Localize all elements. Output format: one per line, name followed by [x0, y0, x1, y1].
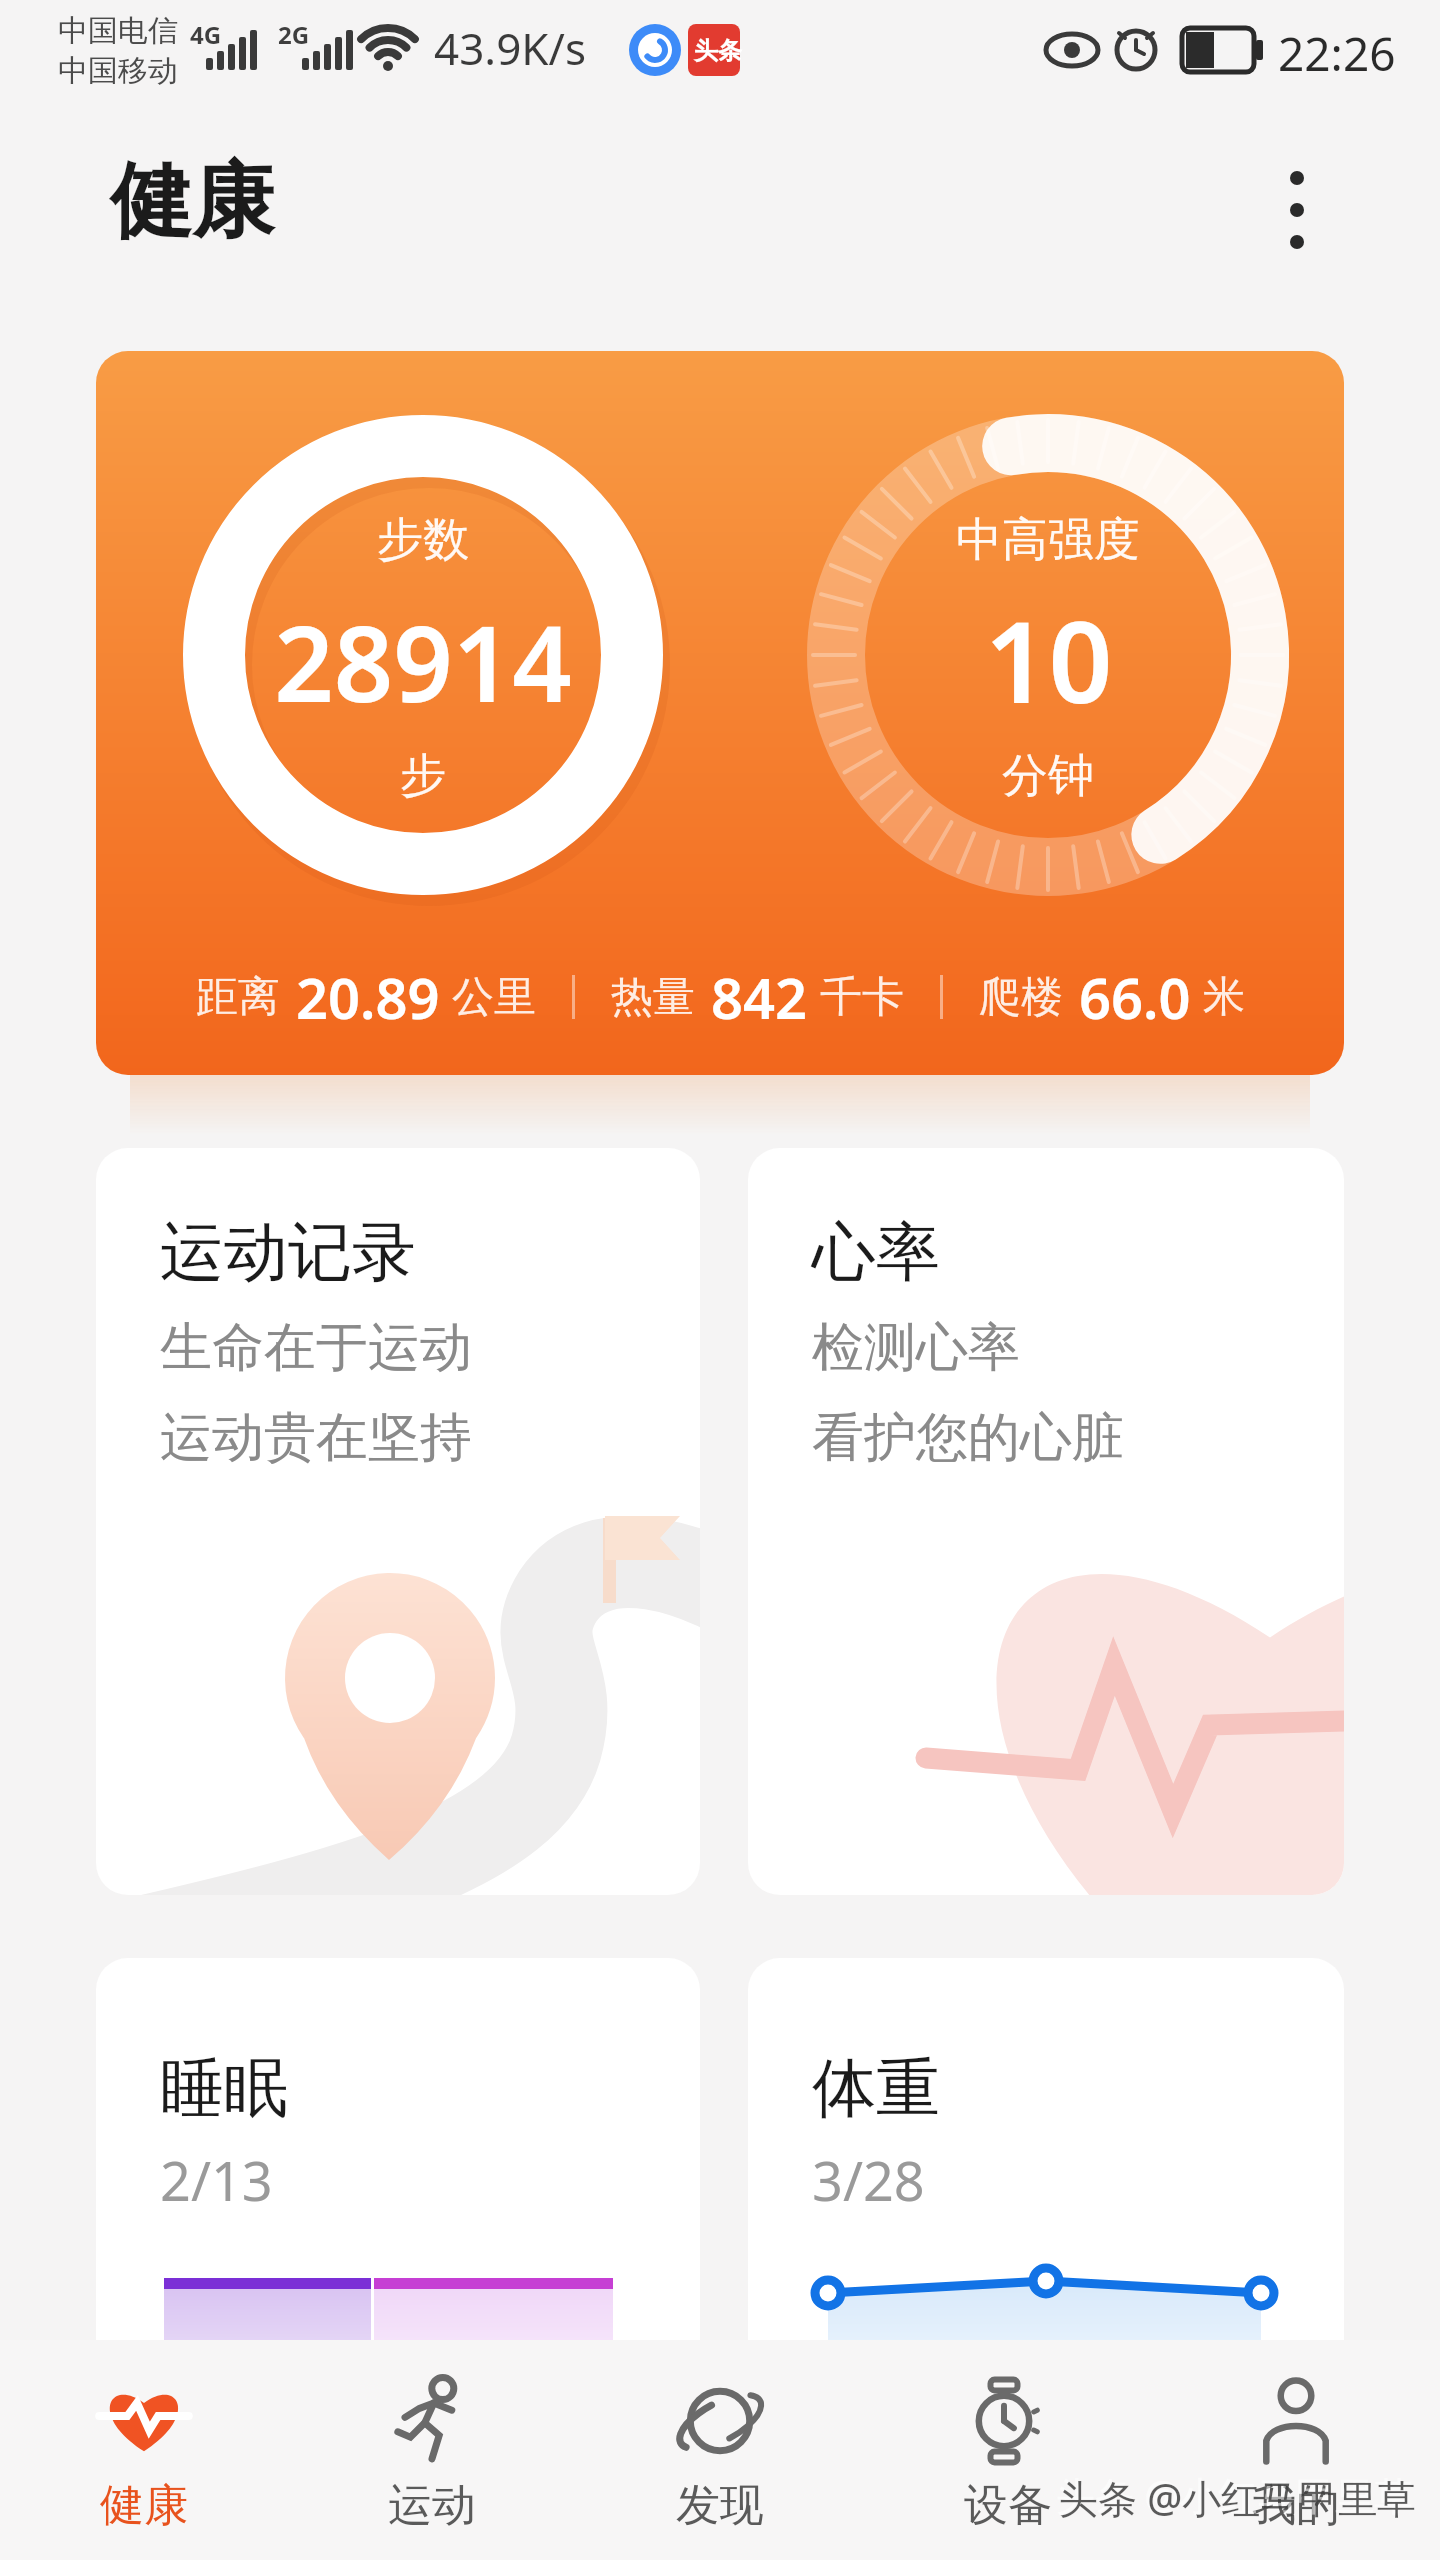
staticText: 健康 — [110, 150, 274, 253]
staticText: 10 — [984, 583, 1113, 736]
staticText: 22:26 — [1278, 22, 1396, 85]
button[interactable]: 步数 — [96, 351, 1344, 1075]
staticText: 66.0 — [1079, 959, 1191, 1035]
staticText: 体重 — [812, 2048, 940, 2129]
button[interactable]: 睡眠 — [96, 1958, 700, 2398]
button[interactable] — [1270, 160, 1330, 280]
button[interactable]: 健康 — [0, 2340, 288, 2560]
staticText: 头条 — [694, 36, 742, 66]
staticText: 米 — [1203, 971, 1245, 1024]
staticText: 健康 — [100, 2478, 188, 2533]
staticText: 43.9K/s — [434, 18, 586, 78]
staticText: 2/13 — [160, 2143, 273, 2217]
button[interactable]: 运动 — [288, 2340, 576, 2560]
button[interactable]: 发现 — [576, 2340, 864, 2560]
staticText: 我的 — [1252, 2478, 1340, 2533]
staticText: 距离 — [196, 971, 280, 1024]
staticText: 步 — [400, 747, 446, 805]
staticText: 3/28 — [812, 2143, 925, 2217]
staticText: 发现 — [676, 2478, 764, 2533]
staticText: 中国移动 — [58, 52, 178, 90]
staticText: 2G — [278, 18, 310, 51]
staticText: 热量 — [611, 971, 695, 1024]
staticText: 20.89 — [296, 959, 440, 1035]
staticText: 运动 — [388, 2478, 476, 2533]
staticText: 分钟 — [1002, 747, 1094, 805]
staticText: 看护您的心脏 — [812, 1405, 1124, 1471]
button[interactable]: 我的 — [1152, 2340, 1440, 2560]
staticText: 中国电信 — [58, 12, 178, 50]
staticText: 运动记录 — [160, 1212, 416, 1293]
staticText: 头条 @小红马甲里草 — [1059, 2471, 1417, 2524]
staticText: 检测心率 — [812, 1315, 1020, 1381]
staticText: 千卡 — [820, 971, 904, 1024]
staticText: 842 — [711, 959, 808, 1035]
staticText: 爬楼 — [979, 971, 1063, 1024]
staticText: 生命在于运动 — [160, 1315, 472, 1381]
staticText: 运动贵在坚持 — [160, 1405, 472, 1471]
staticText: 28914 — [274, 591, 572, 733]
staticText: 4G — [190, 18, 222, 51]
staticText: 睡眠 — [160, 2048, 288, 2129]
staticText: 公里 — [452, 971, 536, 1024]
button[interactable]: 心率 — [748, 1148, 1344, 1895]
staticText: 设备 — [964, 2478, 1052, 2533]
button[interactable]: 设备 — [864, 2340, 1152, 2560]
button[interactable]: 体重 — [748, 1958, 1344, 2398]
staticText: 头条 @小红马甲里草 — [1056, 2468, 1414, 2521]
staticText: 中高强度 — [956, 511, 1140, 569]
button[interactable]: 运动记录 — [96, 1148, 700, 1895]
staticText: 心率 — [812, 1212, 940, 1293]
staticText: 步数 — [377, 511, 469, 569]
